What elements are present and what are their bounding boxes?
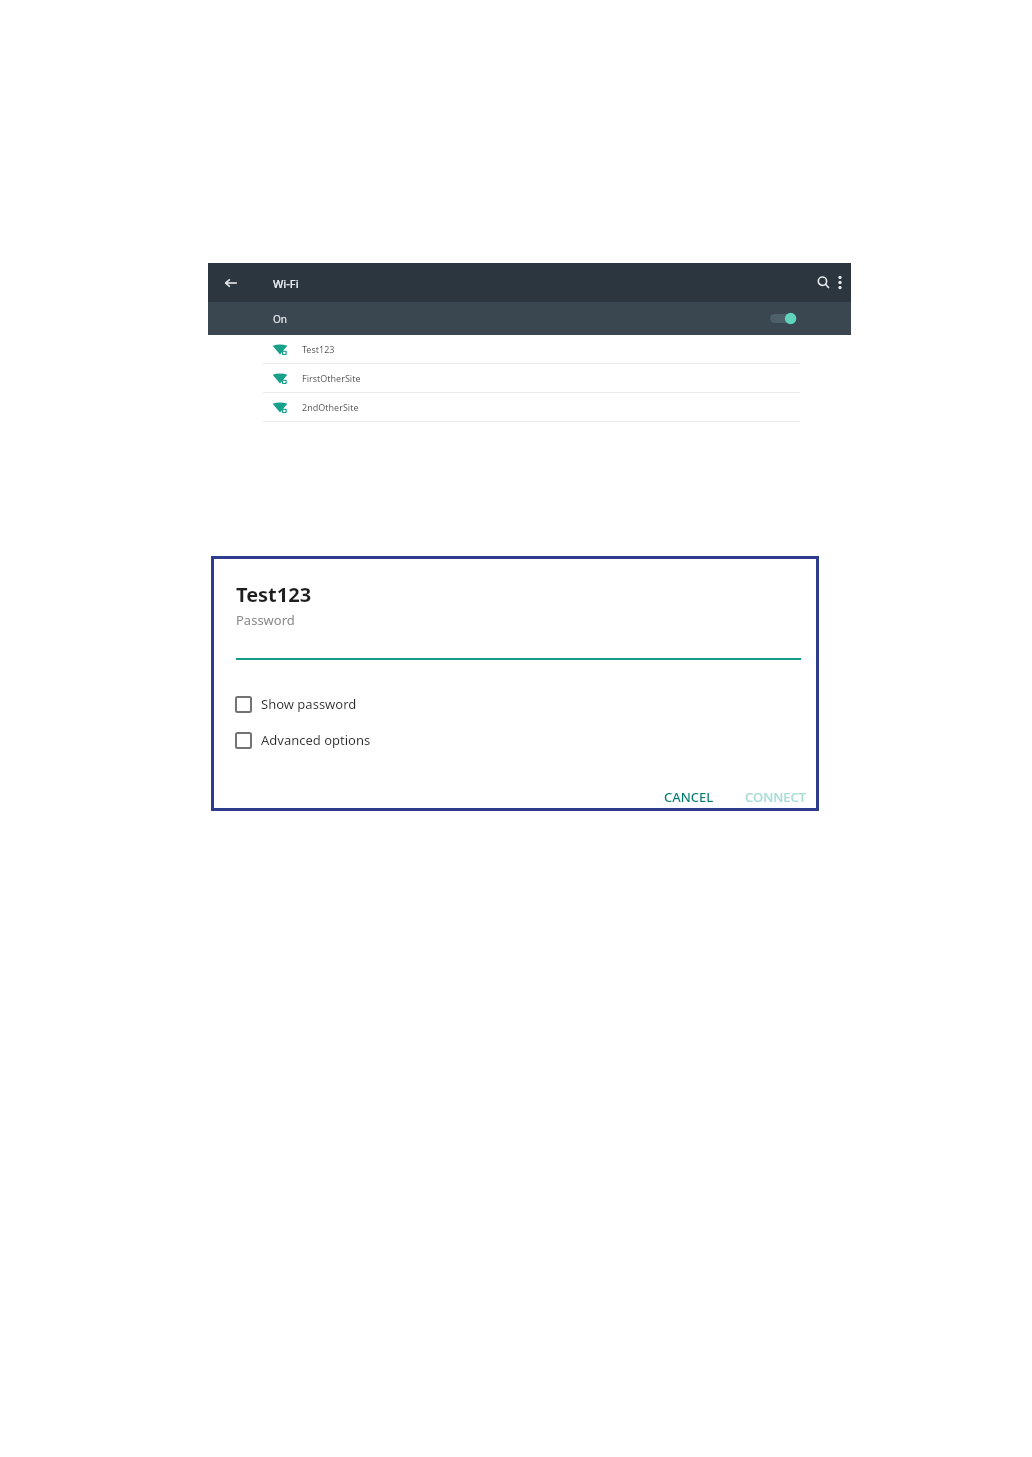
staticText: Advanced options	[261, 731, 371, 749]
button[interactable]: CONNECT	[735, 783, 817, 811]
staticText: Test123	[236, 581, 312, 608]
button[interactable]: 2ndOtherSite	[208, 393, 851, 422]
button[interactable]: Advanced options	[236, 731, 371, 749]
staticText: CONNECT	[745, 788, 807, 806]
staticText: CANCEL	[664, 788, 714, 806]
button[interactable]: On	[208, 302, 851, 335]
staticText: Password	[236, 611, 295, 629]
staticText: Test123	[302, 343, 335, 355]
button[interactable]: Password entry field	[236, 621, 801, 659]
button[interactable]: FirstOtherSite	[208, 364, 851, 393]
button[interactable]: Wi-Fi on	[768, 309, 808, 328]
button[interactable]: Search	[804, 263, 842, 302]
staticText: Show password	[261, 695, 357, 713]
button[interactable]: Test123	[208, 335, 851, 364]
staticText: Wi-Fi	[273, 276, 299, 291]
button[interactable]: Show password	[236, 695, 357, 713]
button[interactable]: More options	[828, 263, 851, 302]
staticText: FirstOtherSite	[302, 372, 361, 384]
staticText: 2ndOtherSite	[302, 401, 359, 413]
button[interactable]: Navigate up	[212, 263, 250, 302]
staticText: On	[273, 312, 287, 326]
button[interactable]: CANCEL	[654, 783, 724, 811]
